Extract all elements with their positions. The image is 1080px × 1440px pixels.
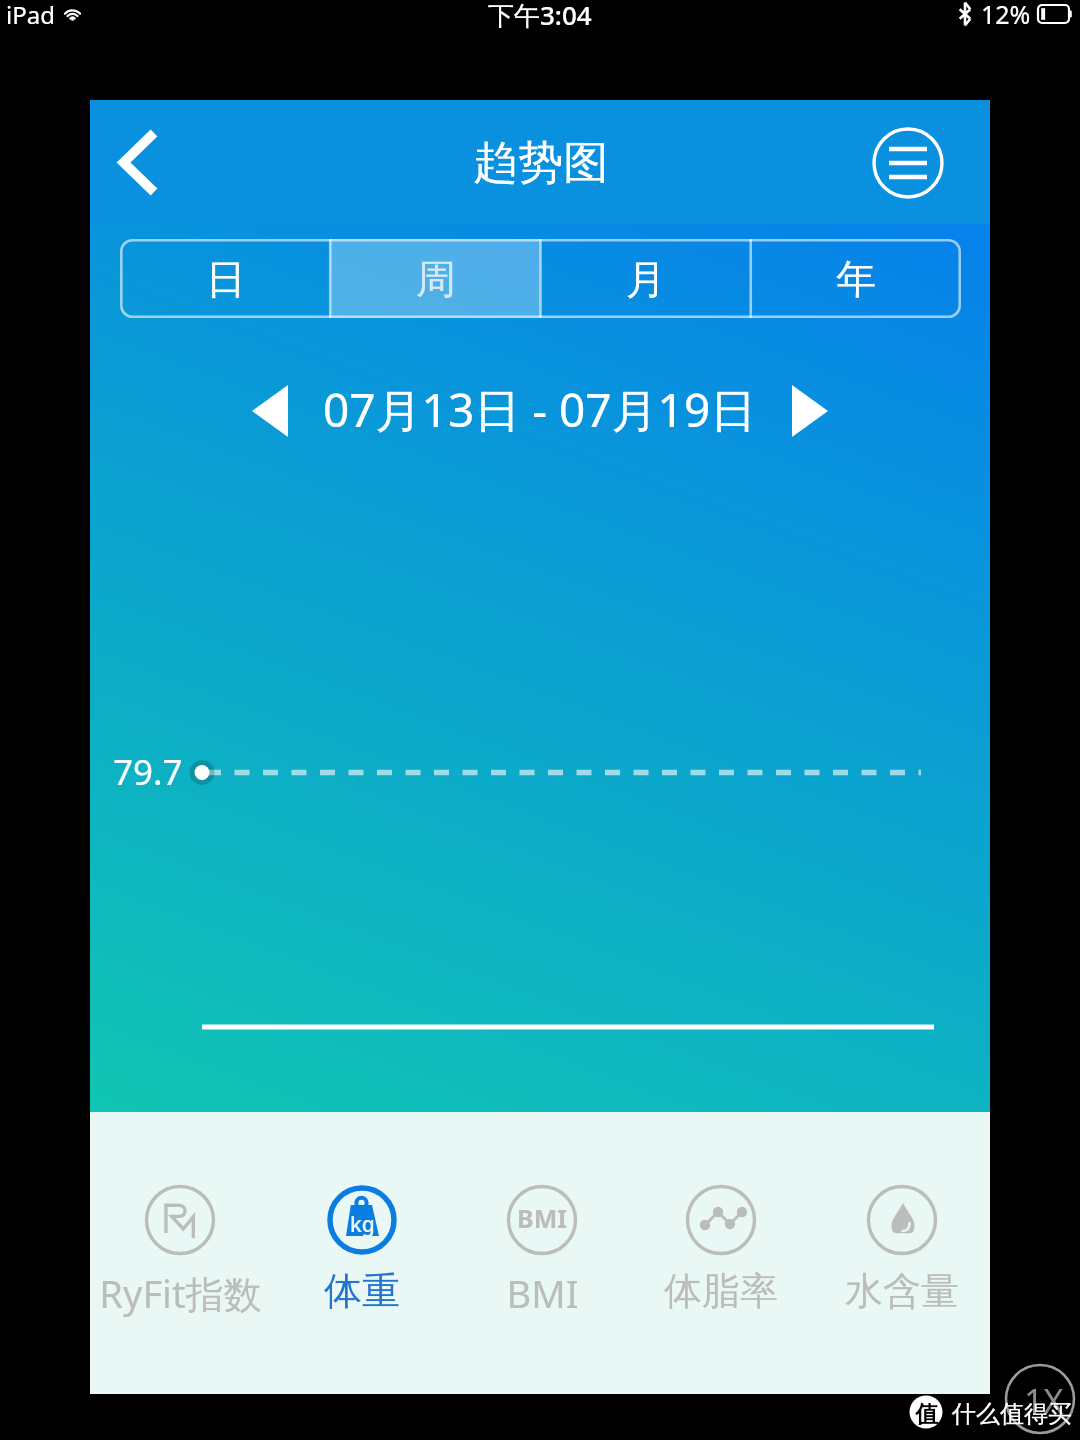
staticText: 年 [836, 254, 876, 304]
button[interactable]: 周 [331, 239, 541, 318]
staticText: RyFit指数 [99, 1267, 262, 1319]
button[interactable]: 体脂率 [629, 1184, 813, 1315]
staticText: 水含量 [845, 1267, 959, 1315]
button[interactable]: Next week [780, 379, 844, 443]
button[interactable]: Back [90, 100, 186, 224]
staticText: iPad [6, 0, 55, 31]
staticText: BMI [517, 1201, 567, 1235]
staticText: 1X [1024, 1378, 1064, 1424]
button[interactable]: 水含量 [810, 1184, 994, 1315]
staticText: 什么值得买 [952, 1399, 1072, 1429]
button[interactable]: 日 [120, 239, 331, 318]
staticText: 月 [626, 254, 666, 304]
staticText: 值 [915, 1400, 938, 1429]
staticText: 下午3:04 [488, 0, 592, 33]
button[interactable]: Menu [868, 123, 948, 203]
button[interactable]: 月 [541, 239, 751, 318]
button[interactable]: kg [270, 1184, 454, 1315]
staticText: BMI [506, 1267, 579, 1319]
button[interactable]: RyFit指数 [88, 1184, 272, 1319]
staticText: 趋势图 [473, 135, 608, 192]
staticText: 体脂率 [664, 1267, 778, 1315]
staticText: 79.7 [113, 748, 183, 796]
staticText: kg [350, 1210, 375, 1239]
button[interactable]: Previous week [236, 379, 300, 443]
staticText: 周 [416, 254, 456, 304]
button[interactable]: 年 [751, 239, 961, 318]
button[interactable]: BMI [450, 1184, 634, 1319]
staticText: 12% [981, 0, 1031, 31]
staticText: 07月13日 - 07月19日 [323, 378, 757, 441]
staticText: 日 [206, 254, 246, 304]
staticText: 体重 [324, 1267, 400, 1315]
